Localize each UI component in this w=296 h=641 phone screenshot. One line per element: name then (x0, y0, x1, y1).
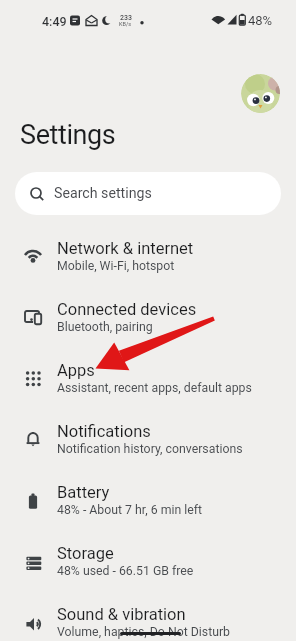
button[interactable]: Network & internet (0, 225, 296, 286)
button[interactable]: Apps (0, 347, 296, 408)
staticText: Connected devices (57, 300, 197, 319)
staticText: 48% used - 66.51 GB free (57, 564, 194, 578)
staticText: 48% - About 7 hr, 6 min left (57, 503, 203, 517)
staticText: Volume, haptics, Do Not Disturb (57, 625, 231, 639)
button[interactable]: Connected devices (0, 286, 296, 347)
button[interactable]: Battery (0, 469, 296, 530)
staticText: 48% (248, 13, 273, 28)
staticText: KB/s (119, 21, 131, 27)
staticText: Mobile, Wi-Fi, hotspot (57, 259, 175, 273)
staticText: Storage (57, 544, 114, 563)
staticText: Apps (57, 361, 95, 380)
staticText: 4:49 (42, 14, 67, 29)
button[interactable]: Storage (0, 530, 296, 591)
staticText: Battery (57, 483, 110, 502)
staticText: Search settings (54, 185, 152, 202)
button[interactable]: Sound & vibration (0, 591, 296, 641)
staticText: Notifications (57, 422, 151, 441)
staticText: Assistant, recent apps, default apps (57, 381, 252, 395)
button[interactable]: Notifications (0, 408, 296, 469)
staticText: Sound & vibration (57, 605, 186, 624)
button[interactable]: Search settings (15, 172, 281, 215)
button[interactable] (241, 74, 280, 113)
staticText: 233 (120, 14, 132, 22)
staticText: Bluetooth, pairing (57, 320, 153, 334)
staticText: Settings (20, 119, 116, 151)
staticText: Notification history, conversations (57, 442, 243, 456)
staticText: Network & internet (57, 239, 194, 258)
